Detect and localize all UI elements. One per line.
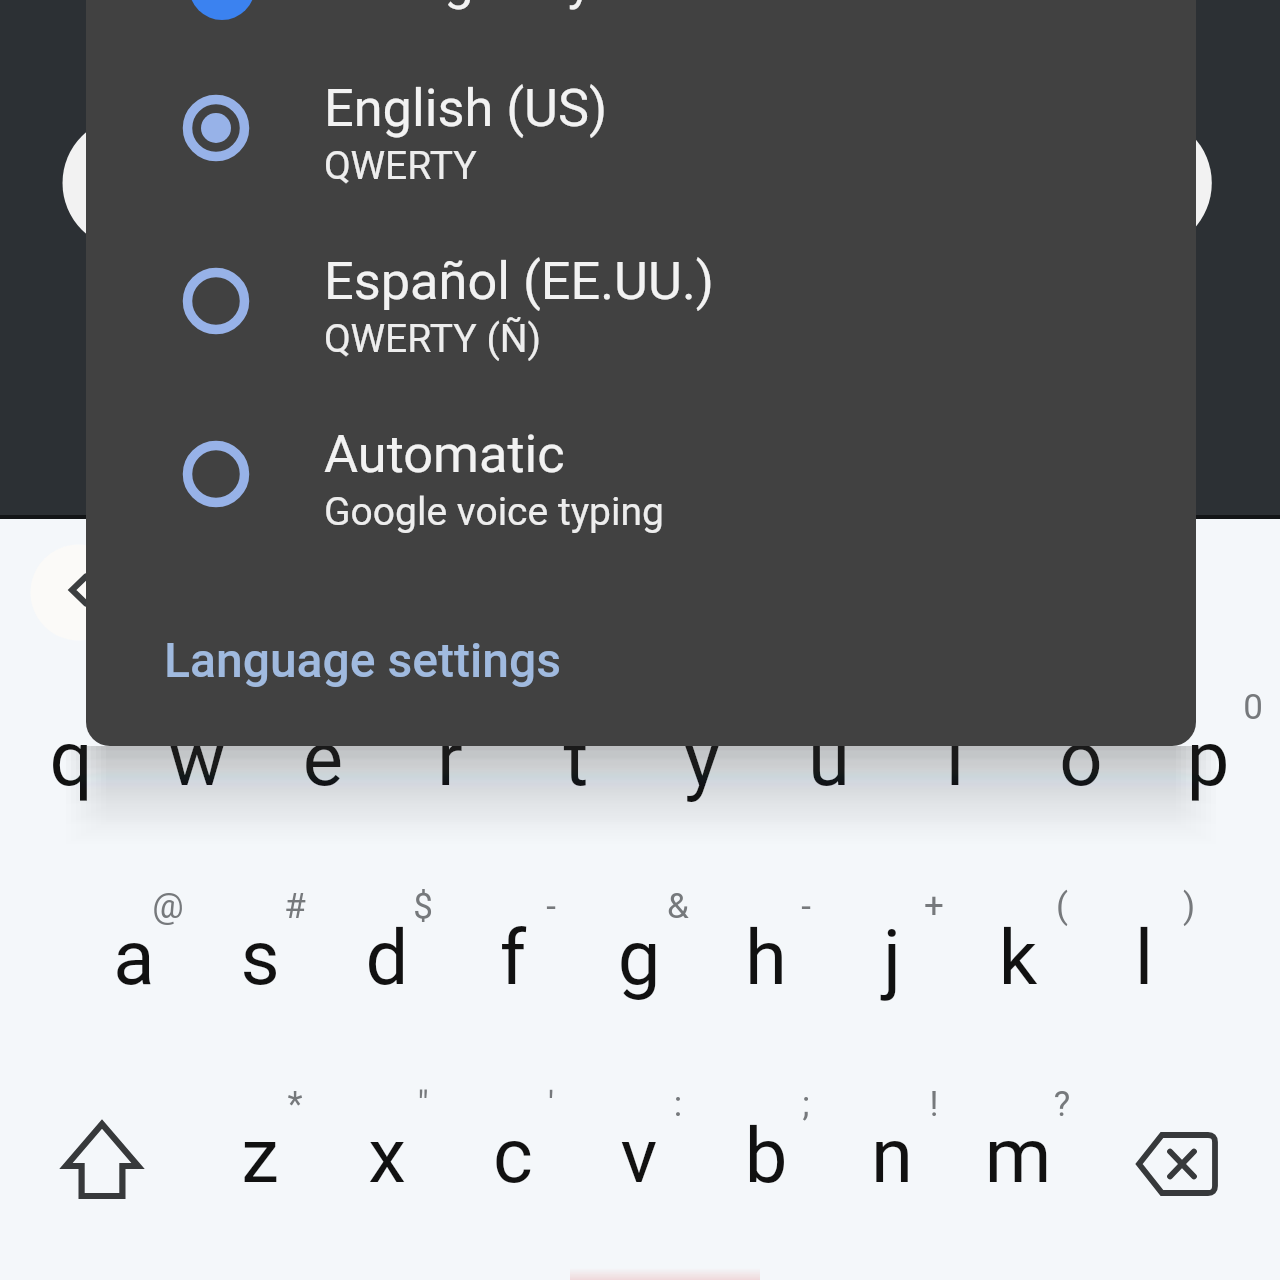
staticText: k [955, 913, 1081, 1002]
staticText: - [488, 886, 614, 927]
staticText: s [197, 913, 323, 1002]
staticText: g [576, 913, 702, 1002]
staticText: ? [999, 1084, 1125, 1125]
staticText: Google voice typing [324, 489, 664, 535]
button[interactable] [197, 834, 323, 1032]
staticText: e [260, 714, 386, 803]
staticText: QWERTY (Ñ) [324, 316, 542, 362]
staticText: z [197, 1111, 323, 1200]
staticText: f [450, 913, 576, 1002]
staticText: - [743, 886, 869, 927]
button[interactable] [71, 834, 197, 1032]
button[interactable] [576, 1032, 702, 1230]
staticText: t [513, 714, 639, 803]
staticText: a [71, 913, 197, 1002]
staticText: u [766, 714, 892, 803]
staticText: l [1081, 913, 1207, 1002]
staticText: o [1018, 714, 1144, 803]
button[interactable] [703, 834, 829, 1032]
staticText: p [1145, 714, 1271, 803]
button[interactable] [1081, 834, 1207, 1032]
button[interactable]: Shift [38, 1096, 166, 1224]
staticText: m [955, 1111, 1081, 1200]
staticText: y [639, 714, 765, 803]
button[interactable] [829, 1032, 955, 1230]
staticText: d [324, 913, 450, 1002]
staticText: j [829, 913, 955, 1002]
staticText: $ [360, 886, 486, 927]
staticText: * [232, 1084, 358, 1125]
staticText: & [615, 886, 741, 927]
button[interactable] [576, 834, 702, 1032]
button[interactable] [8, 635, 134, 833]
staticText: h [703, 913, 829, 1002]
staticText: n [829, 1111, 955, 1200]
staticText: ) [1126, 886, 1252, 927]
button[interactable] [703, 1032, 829, 1230]
button[interactable] [450, 834, 576, 1032]
button[interactable] [134, 635, 260, 833]
button[interactable] [260, 635, 386, 833]
button[interactable]: Backspace [1113, 1100, 1241, 1228]
staticText: : [615, 1084, 741, 1125]
button[interactable] [639, 635, 765, 833]
staticText: Language settings [164, 632, 561, 688]
button[interactable] [324, 1032, 450, 1230]
staticText: q [8, 714, 134, 803]
staticText: Automatic [324, 423, 565, 484]
button[interactable]: Español (EE.UU.) [86, 221, 1196, 391]
staticText: QWERTY [324, 143, 477, 189]
button[interactable] [513, 635, 639, 833]
staticText: @ [105, 886, 231, 927]
staticText: c [450, 1111, 576, 1200]
button[interactable] [324, 834, 450, 1032]
staticText: ! [871, 1084, 997, 1125]
staticText: ( [999, 886, 1125, 927]
staticText: # [232, 886, 358, 927]
staticText: ; [743, 1084, 869, 1125]
staticText: + [871, 886, 997, 927]
button[interactable] [1018, 635, 1144, 833]
button[interactable] [387, 635, 513, 833]
button[interactable] [829, 834, 955, 1032]
staticText: " [360, 1084, 486, 1125]
button[interactable]: Automatic [86, 394, 1196, 564]
button[interactable] [1145, 635, 1271, 833]
staticText: v [576, 1111, 702, 1200]
staticText: 0 [1190, 687, 1280, 728]
staticText: Change keyboard [324, 0, 727, 10]
button[interactable] [766, 635, 892, 833]
staticText: x [324, 1111, 450, 1200]
button[interactable] [892, 635, 1018, 833]
button[interactable] [955, 834, 1081, 1032]
button[interactable]: Language settings [86, 600, 1196, 726]
button[interactable]: Change keyboard [86, 0, 1196, 90]
staticText: English (US) [324, 77, 608, 138]
staticText: b [703, 1111, 829, 1200]
staticText: Español (EE.UU.) [324, 250, 714, 311]
staticText: r [387, 714, 513, 803]
button[interactable] [197, 1032, 323, 1230]
button[interactable] [955, 1032, 1081, 1230]
staticText: ' [488, 1084, 614, 1125]
button[interactable]: English (US) [86, 48, 1196, 218]
staticText: i [892, 714, 1018, 803]
staticText: w [134, 714, 260, 803]
button[interactable] [450, 1032, 576, 1230]
